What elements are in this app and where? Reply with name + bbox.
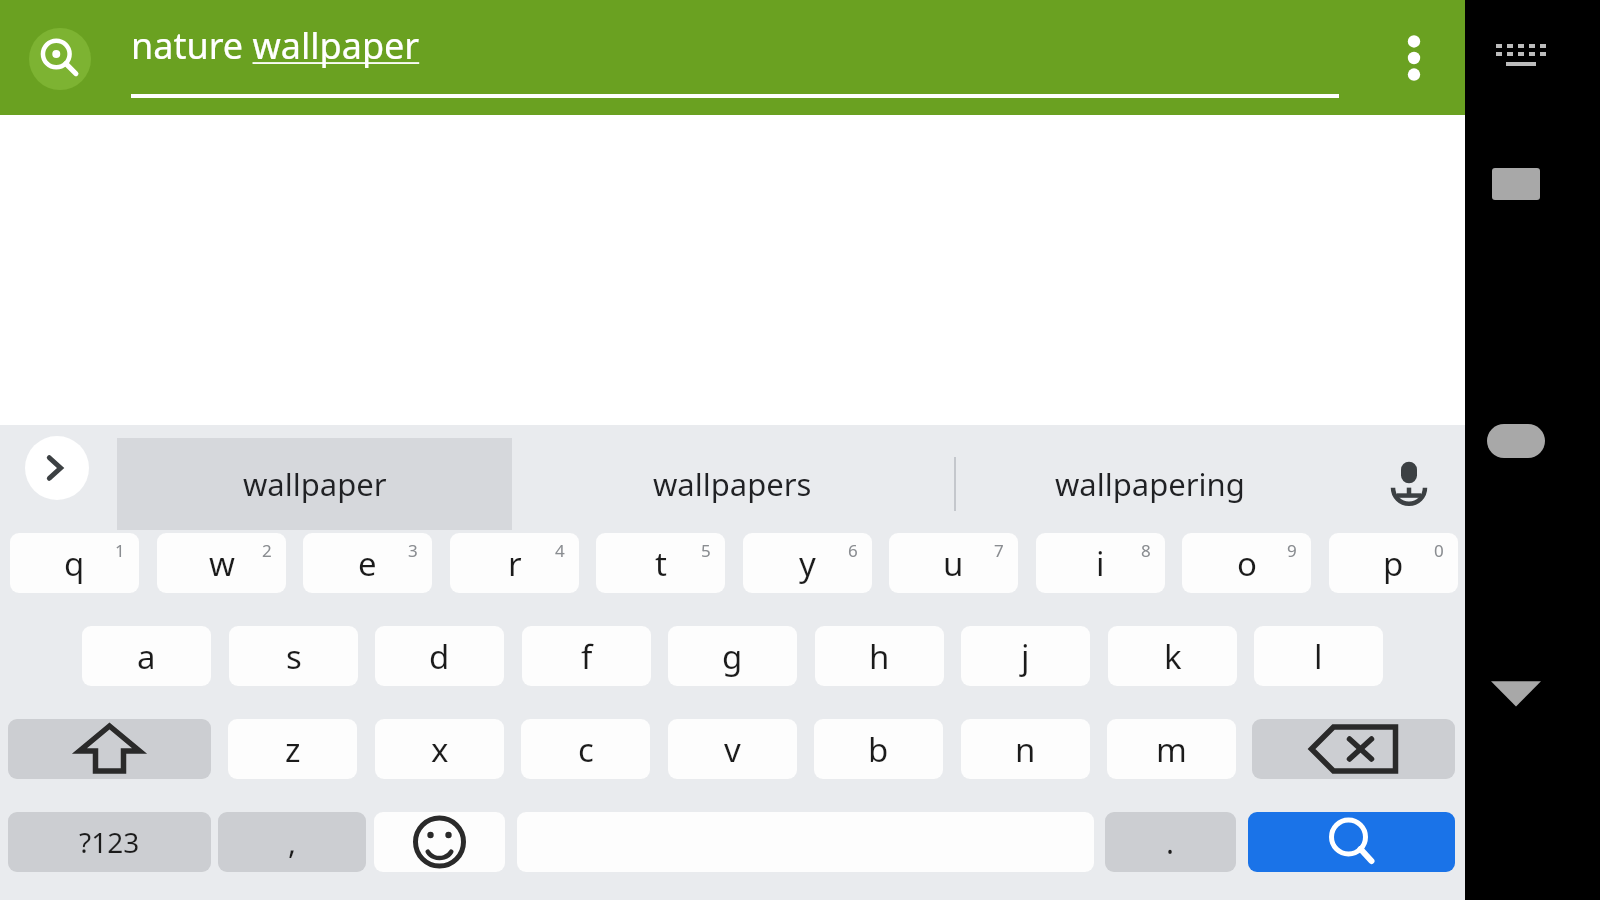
staticText: s bbox=[286, 634, 302, 679]
other: Keyboard active bbox=[1490, 42, 1542, 68]
button[interactable]: , bbox=[218, 812, 366, 872]
button[interactable]: Voice input bbox=[1373, 443, 1445, 515]
button[interactable]: s bbox=[229, 626, 358, 686]
staticText: w bbox=[209, 541, 235, 586]
button[interactable]: m bbox=[1107, 719, 1236, 779]
staticText: 1 bbox=[115, 539, 125, 562]
button[interactable]: w bbox=[157, 533, 286, 593]
button[interactable]: Recents bbox=[1492, 168, 1540, 200]
button[interactable]: Back bbox=[1488, 672, 1544, 714]
staticText: wallpapers bbox=[653, 463, 812, 505]
button[interactable]: More options bbox=[1378, 22, 1450, 94]
staticText: t bbox=[655, 541, 667, 586]
button[interactable]: q bbox=[10, 533, 139, 593]
staticText: x bbox=[431, 727, 449, 772]
button[interactable]: f bbox=[522, 626, 651, 686]
staticText: u bbox=[943, 541, 964, 586]
button[interactable]: i bbox=[1036, 533, 1165, 593]
button[interactable]: c bbox=[521, 719, 650, 779]
button[interactable]: a bbox=[82, 626, 211, 686]
button[interactable]: nature wallpaper bbox=[131, 0, 1341, 115]
button[interactable]: g bbox=[668, 626, 797, 686]
button[interactable]: d bbox=[375, 626, 504, 686]
staticText: z bbox=[285, 727, 301, 772]
staticText: 0 bbox=[1434, 539, 1444, 562]
button[interactable]: b bbox=[814, 719, 943, 779]
button[interactable]: k bbox=[1108, 626, 1237, 686]
staticText: b bbox=[868, 727, 889, 772]
staticText: y bbox=[799, 541, 816, 586]
button[interactable]: u bbox=[889, 533, 1018, 593]
button[interactable]: p bbox=[1329, 533, 1458, 593]
staticText: e bbox=[358, 541, 377, 586]
button[interactable]: Shift bbox=[8, 719, 211, 779]
staticText: o bbox=[1237, 541, 1257, 586]
button[interactable]: e bbox=[303, 533, 432, 593]
staticText: i bbox=[1096, 541, 1105, 586]
staticText: 5 bbox=[701, 539, 711, 562]
staticText: wallpaper bbox=[243, 463, 387, 505]
button[interactable]: Emoji bbox=[374, 812, 505, 872]
staticText: p bbox=[1383, 541, 1404, 586]
staticText: f bbox=[581, 634, 593, 679]
button[interactable]: j bbox=[961, 626, 1090, 686]
staticText: g bbox=[722, 634, 743, 679]
button[interactable]: x bbox=[375, 719, 504, 779]
button[interactable]: Search bbox=[1248, 812, 1455, 872]
button[interactable]: l bbox=[1254, 626, 1383, 686]
staticText: 9 bbox=[1287, 539, 1297, 562]
staticText: nature wallpaper bbox=[131, 21, 420, 70]
button[interactable]: z bbox=[228, 719, 357, 779]
staticText: h bbox=[869, 634, 890, 679]
button[interactable]: n bbox=[961, 719, 1090, 779]
button[interactable]: t bbox=[596, 533, 725, 593]
staticText: . bbox=[1166, 822, 1175, 863]
button[interactable]: Backspace bbox=[1252, 719, 1455, 779]
staticText: c bbox=[578, 727, 594, 772]
staticText: j bbox=[1021, 634, 1030, 679]
staticText: d bbox=[429, 634, 450, 679]
staticText: 2 bbox=[262, 539, 272, 562]
button[interactable]: wallpapers bbox=[535, 438, 930, 530]
button[interactable]: v bbox=[668, 719, 797, 779]
staticText: , bbox=[288, 822, 297, 863]
staticText: v bbox=[724, 727, 741, 772]
staticText: r bbox=[508, 541, 522, 586]
staticText: wallpapering bbox=[1055, 463, 1245, 505]
button[interactable]: y bbox=[743, 533, 872, 593]
staticText: 7 bbox=[994, 539, 1004, 562]
button[interactable]: wallpaper bbox=[117, 438, 512, 530]
staticText: ?123 bbox=[79, 823, 140, 861]
button[interactable]: wallpapering bbox=[960, 438, 1340, 530]
staticText: l bbox=[1314, 634, 1323, 679]
button[interactable]: Expand suggestions bbox=[25, 436, 89, 500]
button[interactable]: . bbox=[1105, 812, 1236, 872]
staticText: n bbox=[1015, 727, 1036, 772]
button[interactable]: ?123 bbox=[8, 812, 211, 872]
button[interactable]: r bbox=[450, 533, 579, 593]
staticText: 4 bbox=[555, 539, 565, 562]
staticText: k bbox=[1164, 634, 1182, 679]
staticText: 8 bbox=[1141, 539, 1151, 562]
staticText: q bbox=[64, 541, 85, 586]
staticText: m bbox=[1156, 727, 1187, 772]
staticText: 6 bbox=[848, 539, 858, 562]
button[interactable]: o bbox=[1182, 533, 1311, 593]
button[interactable]: Search bbox=[29, 28, 91, 90]
button[interactable]: h bbox=[815, 626, 944, 686]
button[interactable]: Home bbox=[1487, 424, 1545, 458]
staticText: a bbox=[137, 634, 156, 679]
staticText: 3 bbox=[408, 539, 418, 562]
